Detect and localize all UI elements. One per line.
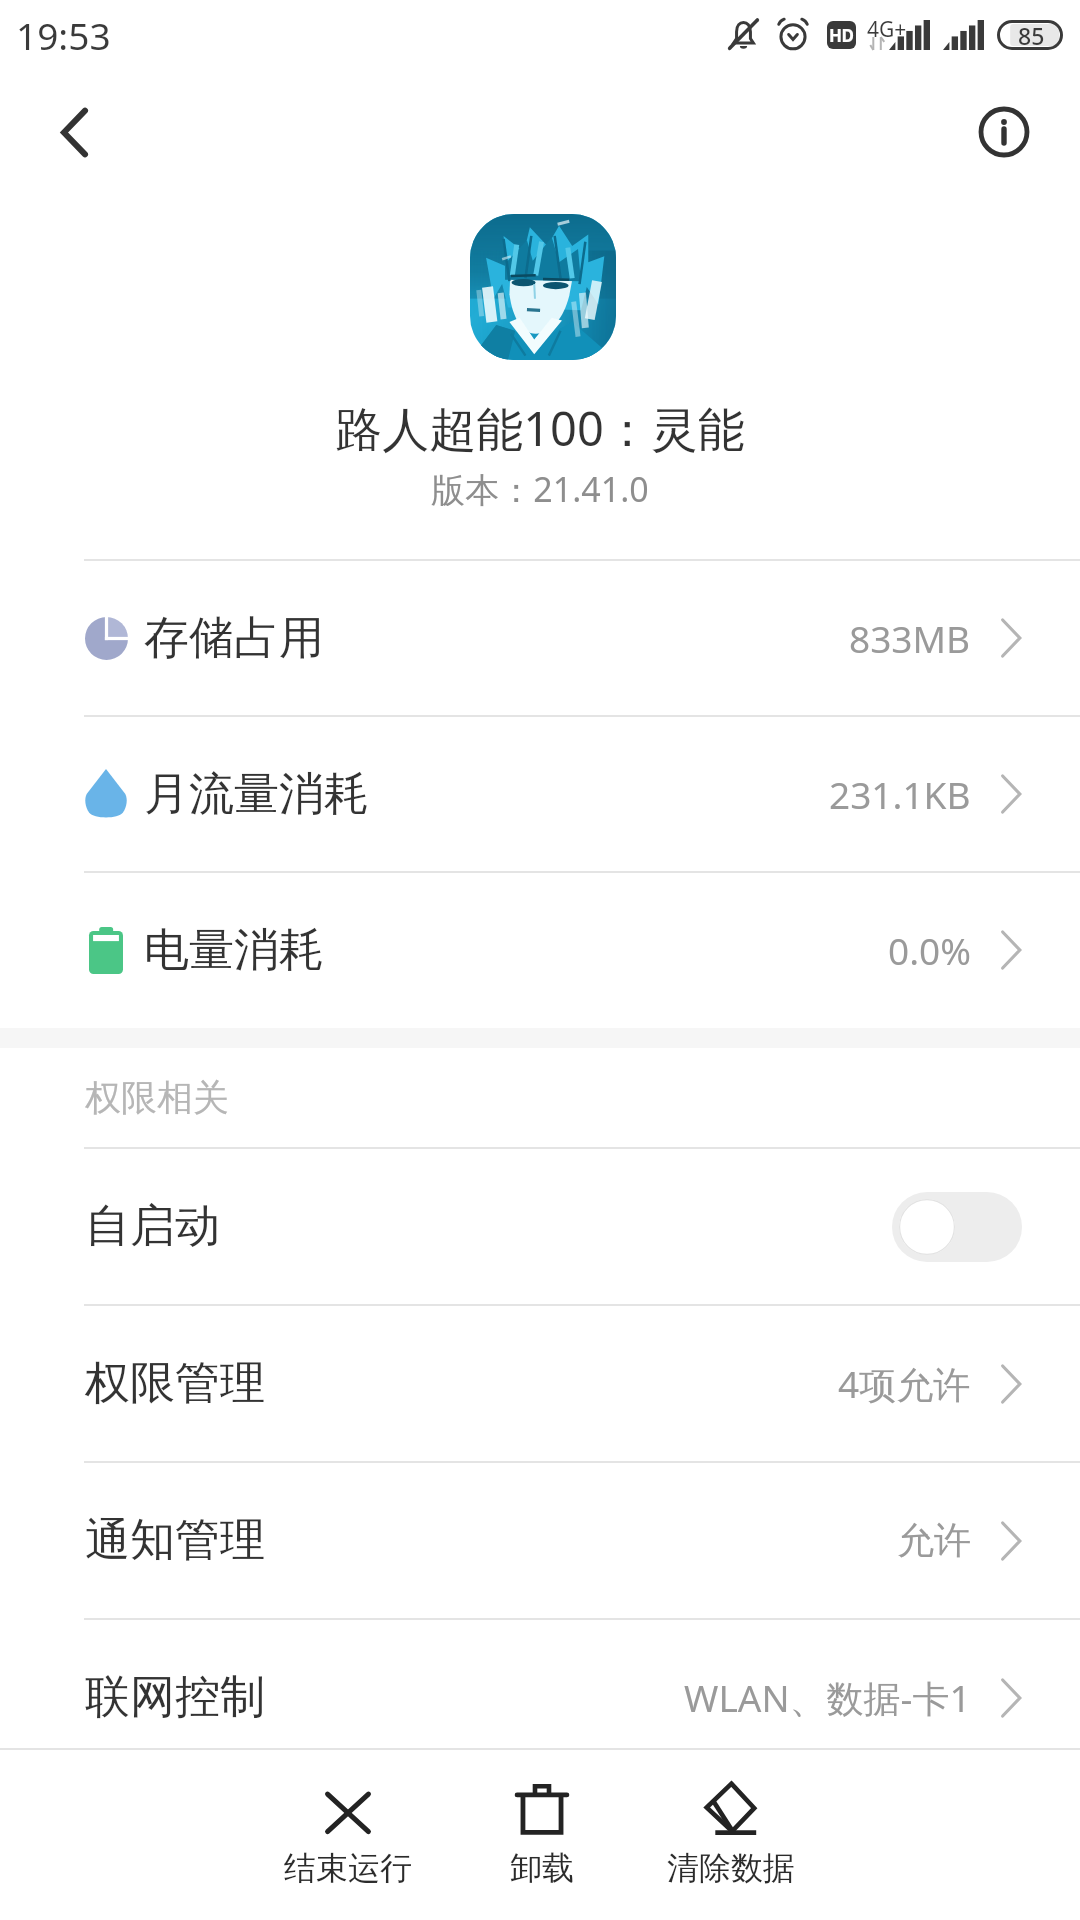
button[interactable]: 联网控制 (0, 1619, 1080, 1776)
staticText: 允许 (897, 1517, 971, 1564)
staticText: 833MB (849, 613, 971, 663)
staticText: 85 (1018, 20, 1045, 50)
button[interactable]: 通知管理 (0, 1462, 1080, 1619)
staticText: 结束运行 (284, 1848, 412, 1888)
staticText: HD (829, 24, 854, 47)
staticText: 电量消耗 (144, 922, 324, 979)
staticText: 权限管理 (85, 1355, 265, 1412)
staticText: 0.0% (888, 925, 971, 975)
button[interactable]: 月流量消耗 (0, 716, 1080, 872)
button[interactable]: 电量消耗 (0, 872, 1080, 1028)
staticText: 版本：21.41.0 (431, 466, 649, 512)
staticText: 4项允许 (838, 1358, 971, 1409)
staticText: WLAN、数据-卡1 (684, 1672, 971, 1723)
staticText: 231.1KB (829, 769, 971, 819)
button[interactable]: 清除数据 (636, 1770, 826, 1910)
button[interactable]: Back (31, 89, 117, 175)
staticText: 存储占用 (144, 610, 324, 667)
staticText: 路人超能100：灵能 (335, 396, 745, 460)
button[interactable]: App info (961, 89, 1047, 175)
staticText: 卸载 (510, 1848, 574, 1888)
staticText: 自启动 (85, 1198, 220, 1255)
staticText: 通知管理 (85, 1512, 265, 1569)
button[interactable]: 自启动 (0, 1148, 1080, 1305)
staticText: 4G+ (867, 15, 907, 44)
staticText: 月流量消耗 (144, 766, 369, 823)
staticText: 19:53 (16, 10, 111, 60)
button[interactable]: Autostart toggle (892, 1192, 1022, 1262)
button[interactable]: 存储占用 (0, 560, 1080, 716)
staticText: 清除数据 (667, 1848, 795, 1888)
button[interactable]: 卸载 (447, 1770, 637, 1910)
staticText: 权限相关 (85, 1075, 229, 1120)
button[interactable]: 结束运行 (253, 1770, 443, 1910)
staticText: 联网控制 (85, 1669, 265, 1726)
button[interactable]: 权限管理 (0, 1305, 1080, 1462)
